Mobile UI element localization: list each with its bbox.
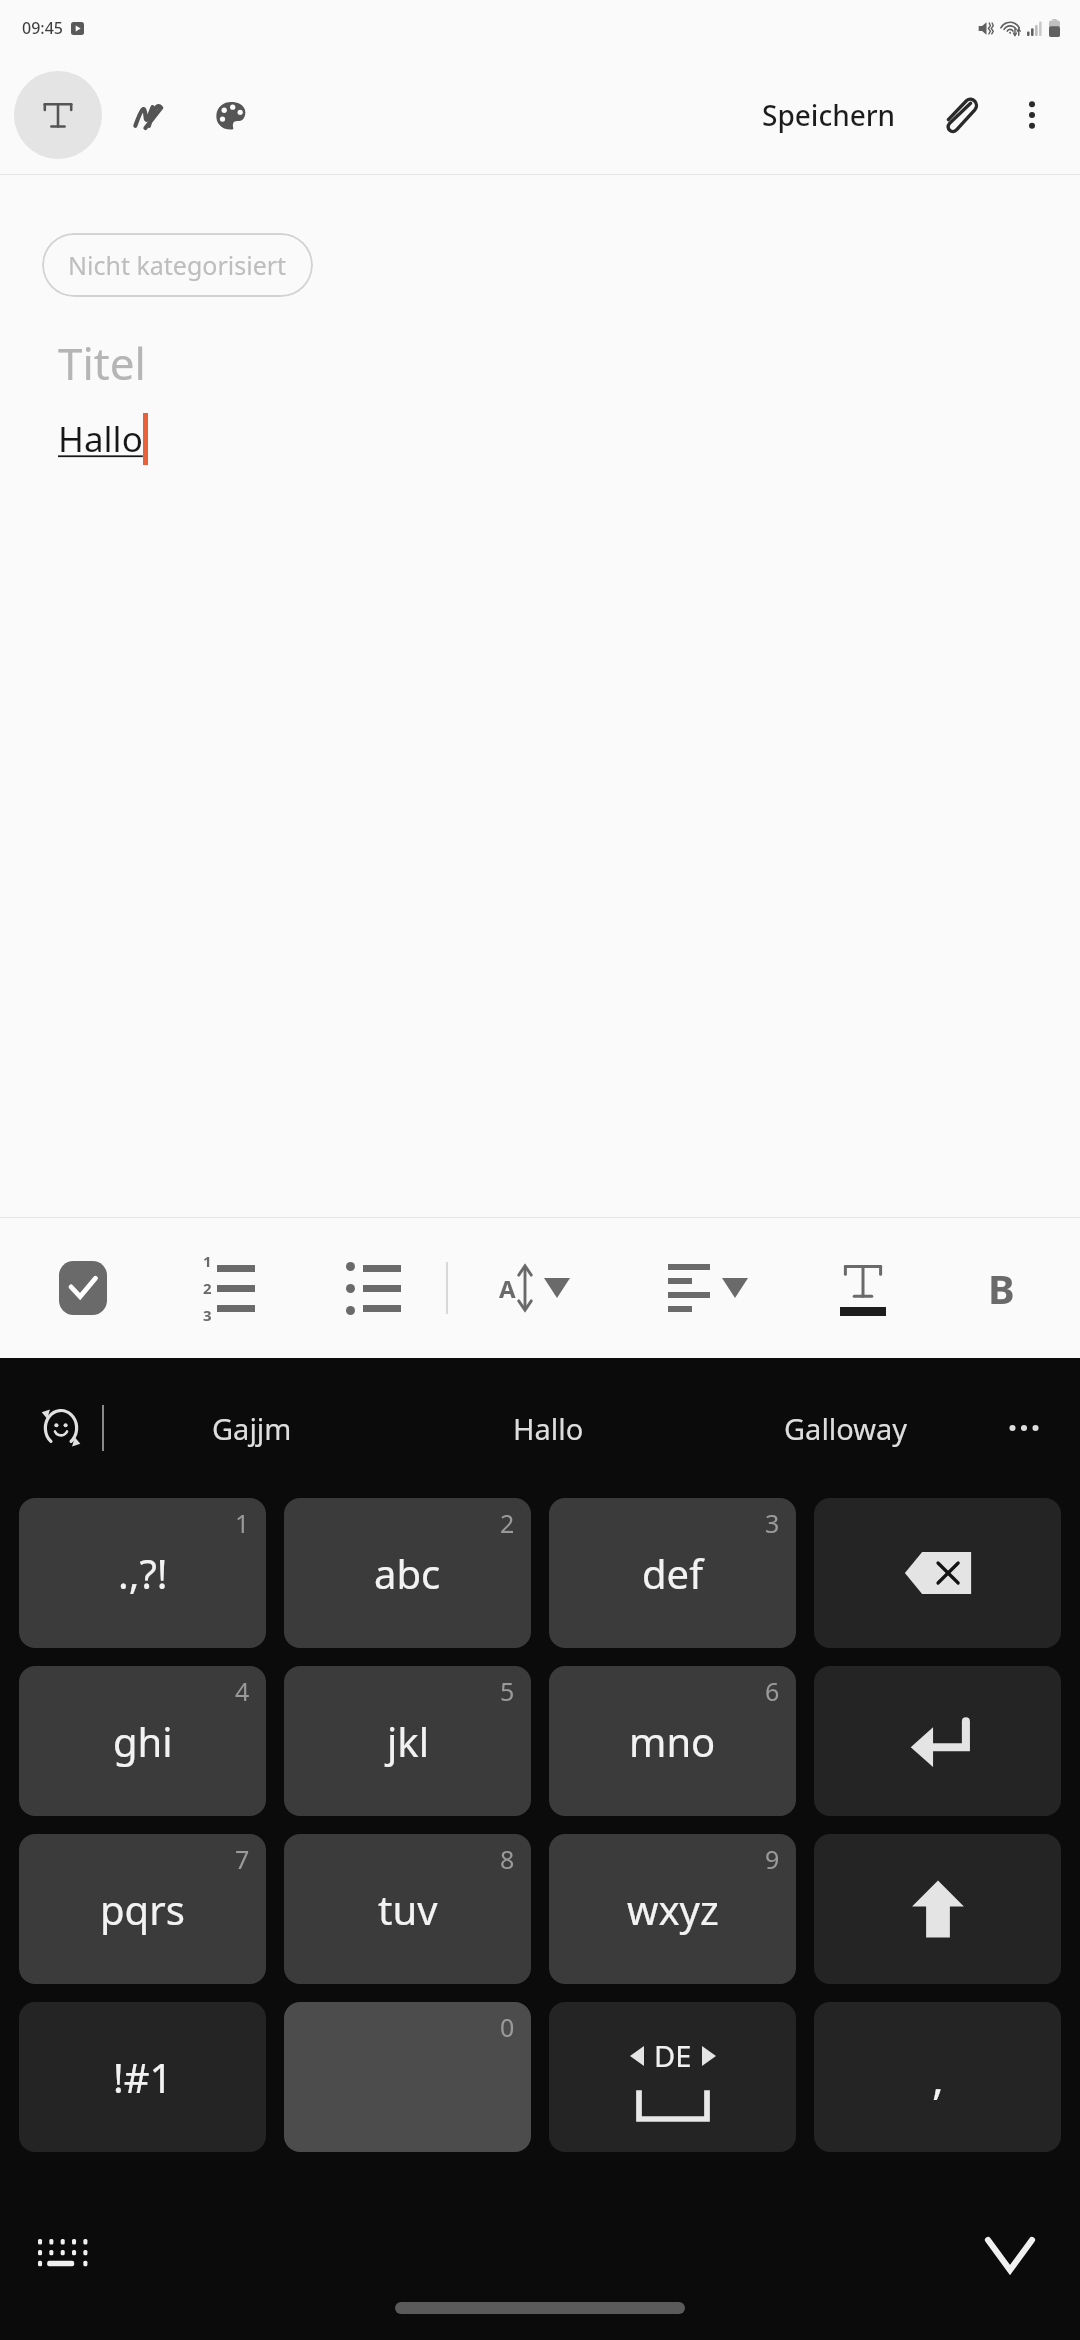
button[interactable]: Eingabe <box>814 1666 1061 1816</box>
button[interactable]: Sprache und Leerzeichen <box>549 2002 796 2152</box>
button[interactable]: Löschen <box>814 1498 1061 1648</box>
button[interactable]: Checkliste <box>10 1218 156 1358</box>
staticText: 6 <box>765 1674 780 1708</box>
button[interactable]: Aufzählung <box>301 1218 446 1358</box>
staticText: pqrs <box>100 1882 185 1936</box>
staticText: mno <box>629 1714 716 1768</box>
button[interactable]: Nicht kategorisiert <box>42 233 313 297</box>
staticText: Hallo <box>58 415 143 463</box>
button[interactable]: Galloway <box>697 1358 994 1498</box>
button[interactable]: Leerzeichen 0 <box>284 2002 531 2152</box>
staticText: Gajjm <box>212 1409 292 1448</box>
button[interactable]: .,?! <box>19 1498 266 1648</box>
button[interactable]: Gajjm <box>104 1358 400 1498</box>
button[interactable]: Nummerierte Liste <box>156 1218 301 1358</box>
staticText: !#1 <box>113 2050 173 2104</box>
staticText: Galloway <box>784 1409 908 1448</box>
button[interactable]: Komma <box>814 2002 1061 2152</box>
button[interactable]: Zeichnen <box>110 76 188 154</box>
staticText: 4 <box>235 1674 250 1708</box>
staticText: 8 <box>500 1842 515 1876</box>
button[interactable]: Tastatur schließen <box>970 2215 1050 2295</box>
staticText: def <box>642 1546 703 1600</box>
staticText: 1 <box>203 1251 212 1271</box>
staticText: 0 <box>500 2010 515 2044</box>
button[interactable]: Unterstreichen <box>794 1218 932 1358</box>
staticText: 7 <box>235 1842 250 1876</box>
button[interactable]: mno <box>549 1666 796 1816</box>
button[interactable]: Speichern <box>750 86 908 144</box>
staticText: Speichern <box>762 96 896 134</box>
button[interactable]: Umschalt <box>814 1834 1061 1984</box>
staticText: A <box>499 1272 516 1305</box>
button[interactable]: pqrs <box>19 1834 266 1984</box>
button[interactable]: abc <box>284 1498 531 1648</box>
button[interactable]: Mehr Vorschläge <box>994 1398 1054 1458</box>
staticText: B <box>988 1261 1015 1315</box>
button[interactable]: Weitere Optionen <box>996 79 1068 151</box>
staticText: 2 <box>500 1506 515 1540</box>
button[interactable]: jkl <box>284 1666 531 1816</box>
button[interactable]: Emoji <box>30 1397 92 1459</box>
staticText: jkl <box>387 1714 429 1768</box>
staticText: 1 <box>235 1506 250 1540</box>
button[interactable]: Anhang <box>922 79 994 151</box>
button[interactable]: ghi <box>19 1666 266 1816</box>
staticText: 2 <box>203 1278 212 1298</box>
staticText: 5 <box>500 1674 515 1708</box>
button[interactable]: def <box>549 1498 796 1648</box>
staticText: abc <box>374 1546 441 1600</box>
button[interactable]: Tastatur wechseln <box>30 2220 100 2290</box>
staticText: tuv <box>378 1882 438 1936</box>
button[interactable]: !#1 <box>19 2002 266 2152</box>
staticText: 3 <box>765 1506 780 1540</box>
staticText: 09:45 <box>22 17 63 39</box>
staticText: .,?! <box>118 1546 168 1600</box>
staticText: 9 <box>765 1842 780 1876</box>
button[interactable]: wxyz <box>549 1834 796 1984</box>
button[interactable]: Schriftgröße <box>448 1218 621 1358</box>
staticText: Hallo <box>513 1409 584 1448</box>
button[interactable]: Fett <box>932 1218 1070 1358</box>
staticText: DE <box>654 2036 692 2075</box>
staticText: Titel <box>58 333 146 393</box>
button[interactable]: Farbpalette <box>192 76 270 154</box>
staticText: wxyz <box>627 1882 719 1936</box>
staticText: 3 <box>203 1305 212 1325</box>
button[interactable]: Ausrichtung <box>621 1218 794 1358</box>
staticText: , <box>932 2047 944 2107</box>
button[interactable]: Text <box>14 71 102 159</box>
staticText: ghi <box>113 1714 173 1768</box>
button[interactable]: tuv <box>284 1834 531 1984</box>
staticText: Nicht kategorisiert <box>68 248 287 282</box>
button[interactable]: Hallo <box>400 1358 697 1498</box>
